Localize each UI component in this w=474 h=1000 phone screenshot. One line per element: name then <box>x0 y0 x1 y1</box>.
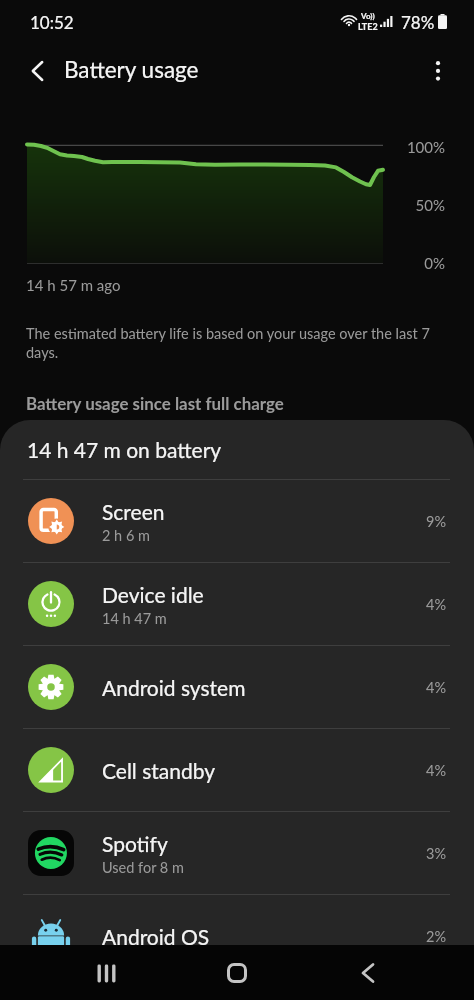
staticText: Screen <box>102 499 165 524</box>
button[interactable]: Device idle <box>0 563 474 645</box>
staticText: 10:52 <box>30 12 74 32</box>
staticText: 100% <box>0 138 445 156</box>
staticText: Android system <box>102 675 246 700</box>
button[interactable]: Screen <box>0 480 474 562</box>
staticText: 4% <box>426 596 447 613</box>
staticText: 78% <box>401 12 435 32</box>
button[interactable]: Android OS <box>0 895 474 977</box>
staticText: Battery usage since last full charge <box>26 393 284 413</box>
button[interactable]: Spotify <box>0 812 474 894</box>
staticText: 4% <box>426 762 447 779</box>
staticText: 50% <box>0 196 445 214</box>
button[interactable]: Cell standby <box>0 729 474 811</box>
staticText: Vo)) <box>361 11 375 21</box>
staticText: 14 h 47 m on battery <box>27 437 222 462</box>
staticText: Spotify <box>102 831 168 856</box>
staticText: Android OS <box>102 924 210 949</box>
button[interactable]: Back <box>343 948 393 998</box>
staticText: 14 h 47 m <box>102 610 167 627</box>
button[interactable]: More options <box>420 53 456 89</box>
staticText: 2 h 6 m <box>102 527 150 544</box>
staticText: The estimated battery life is based on y… <box>26 325 441 361</box>
staticText: 3% <box>426 845 447 862</box>
staticText: 4% <box>426 679 447 696</box>
button[interactable]: Navigate up <box>20 53 56 89</box>
staticText: Battery usage <box>64 56 199 83</box>
staticText: LTE2 <box>358 21 378 32</box>
button[interactable]: Home <box>212 948 262 998</box>
button[interactable]: Android system <box>0 646 474 728</box>
staticText: 0% <box>0 254 445 272</box>
button[interactable]: Recents <box>81 948 131 998</box>
staticText: Cell standby <box>102 758 216 783</box>
staticText: 9% <box>426 513 447 530</box>
staticText: 14 h 57 m ago <box>26 276 121 294</box>
staticText: 2% <box>426 928 447 945</box>
staticText: Used for 8 m <box>102 859 184 876</box>
staticText: Device idle <box>102 582 204 607</box>
